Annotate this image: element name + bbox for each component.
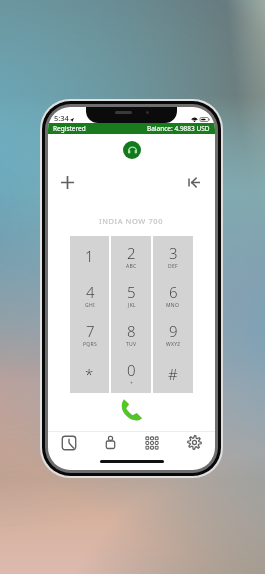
staticText: 6 bbox=[169, 282, 178, 302]
staticText: 5 bbox=[127, 282, 136, 302]
button[interactable]: Keypad bbox=[131, 432, 173, 453]
staticText: * bbox=[85, 364, 94, 384]
staticText: WXYZ bbox=[166, 341, 181, 348]
button[interactable]: 3 bbox=[153, 236, 193, 276]
staticText: ABC bbox=[126, 263, 137, 270]
staticText: 3 bbox=[169, 243, 178, 263]
button[interactable]: 2 bbox=[111, 236, 151, 276]
button[interactable]: Contacts bbox=[89, 432, 131, 453]
staticText: 8 bbox=[127, 321, 136, 341]
button[interactable]: Account bbox=[123, 141, 141, 159]
staticText: Balance: 4.9883 USD bbox=[147, 124, 210, 133]
staticText: INDIA NOW 700 bbox=[99, 216, 164, 226]
staticText: 9 bbox=[169, 321, 178, 341]
button[interactable]: 8 bbox=[111, 315, 151, 354]
staticText: JKL bbox=[128, 302, 136, 309]
button[interactable]: 6 bbox=[153, 276, 193, 315]
button[interactable]: Recents bbox=[48, 432, 89, 453]
button[interactable]: Call bbox=[117, 395, 147, 425]
button[interactable]: Backspace bbox=[183, 171, 205, 193]
staticText: GHI bbox=[85, 302, 95, 309]
staticText: PQRS bbox=[83, 341, 97, 348]
staticText: 4 bbox=[86, 282, 95, 302]
button[interactable]: # bbox=[153, 354, 193, 393]
staticText: TUV bbox=[126, 341, 137, 348]
button[interactable]: Settings bbox=[173, 432, 215, 453]
staticText: 7 bbox=[86, 321, 95, 341]
staticText: + bbox=[130, 380, 134, 387]
button[interactable]: 9 bbox=[153, 315, 193, 354]
staticText: DEF bbox=[168, 263, 178, 270]
button[interactable]: 0 bbox=[111, 354, 151, 393]
staticText: 2 bbox=[127, 243, 136, 263]
staticText: 1 bbox=[85, 246, 94, 266]
staticText: Registered bbox=[53, 124, 86, 133]
staticText: MNO bbox=[166, 302, 180, 309]
button[interactable]: 5 bbox=[111, 276, 151, 315]
button[interactable]: * bbox=[70, 354, 109, 393]
button[interactable]: 7 bbox=[70, 315, 109, 354]
button[interactable]: 1 bbox=[70, 236, 109, 276]
staticText: 0 bbox=[127, 360, 136, 380]
staticText: # bbox=[168, 364, 178, 384]
button[interactable]: Add contact bbox=[56, 171, 78, 193]
button[interactable]: 4 bbox=[70, 276, 109, 315]
staticText: 5:34 bbox=[54, 113, 69, 123]
